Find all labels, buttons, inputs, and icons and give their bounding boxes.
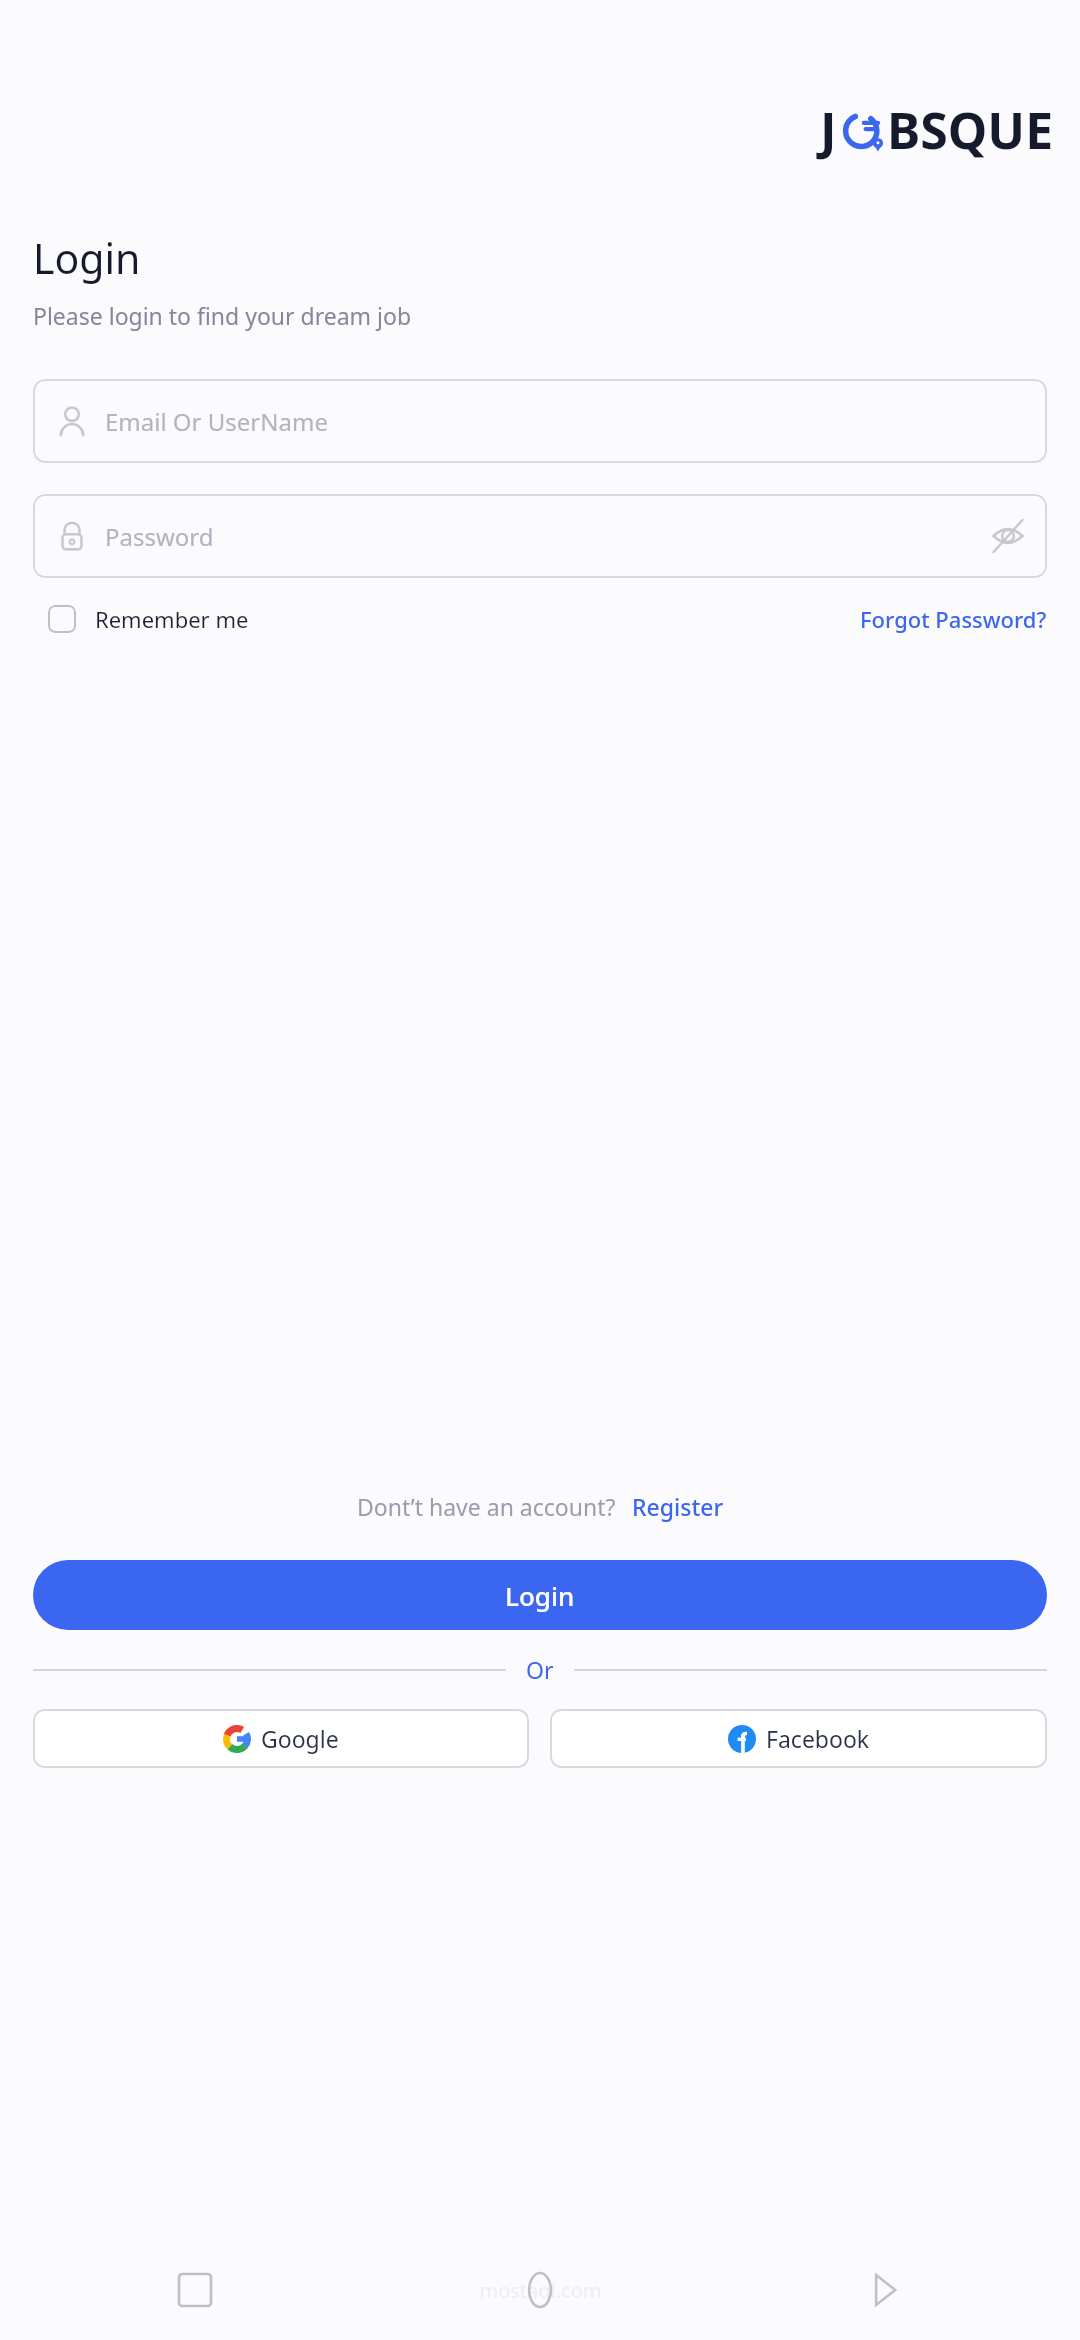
staticText: Google bbox=[261, 1723, 339, 1754]
button[interactable]: Home bbox=[515, 2265, 565, 2315]
staticText: Or bbox=[526, 1654, 554, 1685]
staticText: Password bbox=[105, 520, 214, 553]
button[interactable]: Email Or UserName field bbox=[33, 379, 1047, 463]
button[interactable]: Recent apps bbox=[170, 2265, 220, 2315]
button[interactable]: Facebook bbox=[550, 1709, 1047, 1768]
staticText: Remember me bbox=[95, 604, 249, 634]
button[interactable]: Login bbox=[33, 1560, 1047, 1630]
button[interactable]: Remember me bbox=[48, 604, 249, 634]
button[interactable]: Toggle password visibility bbox=[989, 517, 1027, 555]
staticText: Register bbox=[632, 1491, 724, 1522]
staticText: Facebook bbox=[766, 1723, 870, 1754]
staticText: Login bbox=[33, 230, 141, 286]
staticText: mostaql.com bbox=[479, 2277, 602, 2304]
staticText: Forgot Password? bbox=[860, 604, 1047, 634]
staticText: Login bbox=[505, 1578, 575, 1613]
staticText: BSQUE bbox=[887, 96, 1054, 164]
button[interactable]: Forgot Password? bbox=[860, 604, 1047, 634]
button[interactable]: Password field bbox=[33, 494, 1047, 578]
staticText: Please login to find your dream job bbox=[33, 300, 412, 331]
staticText: Email Or UserName bbox=[105, 405, 328, 438]
button[interactable]: Google bbox=[33, 1709, 529, 1768]
staticText: J bbox=[820, 96, 837, 164]
button[interactable]: Register bbox=[632, 1491, 724, 1522]
button[interactable]: Back bbox=[860, 2265, 910, 2315]
staticText: Dont’t have an account? bbox=[357, 1491, 616, 1522]
